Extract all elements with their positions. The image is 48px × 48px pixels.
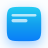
button[interactable]: App icon bbox=[7, 7, 41, 41]
